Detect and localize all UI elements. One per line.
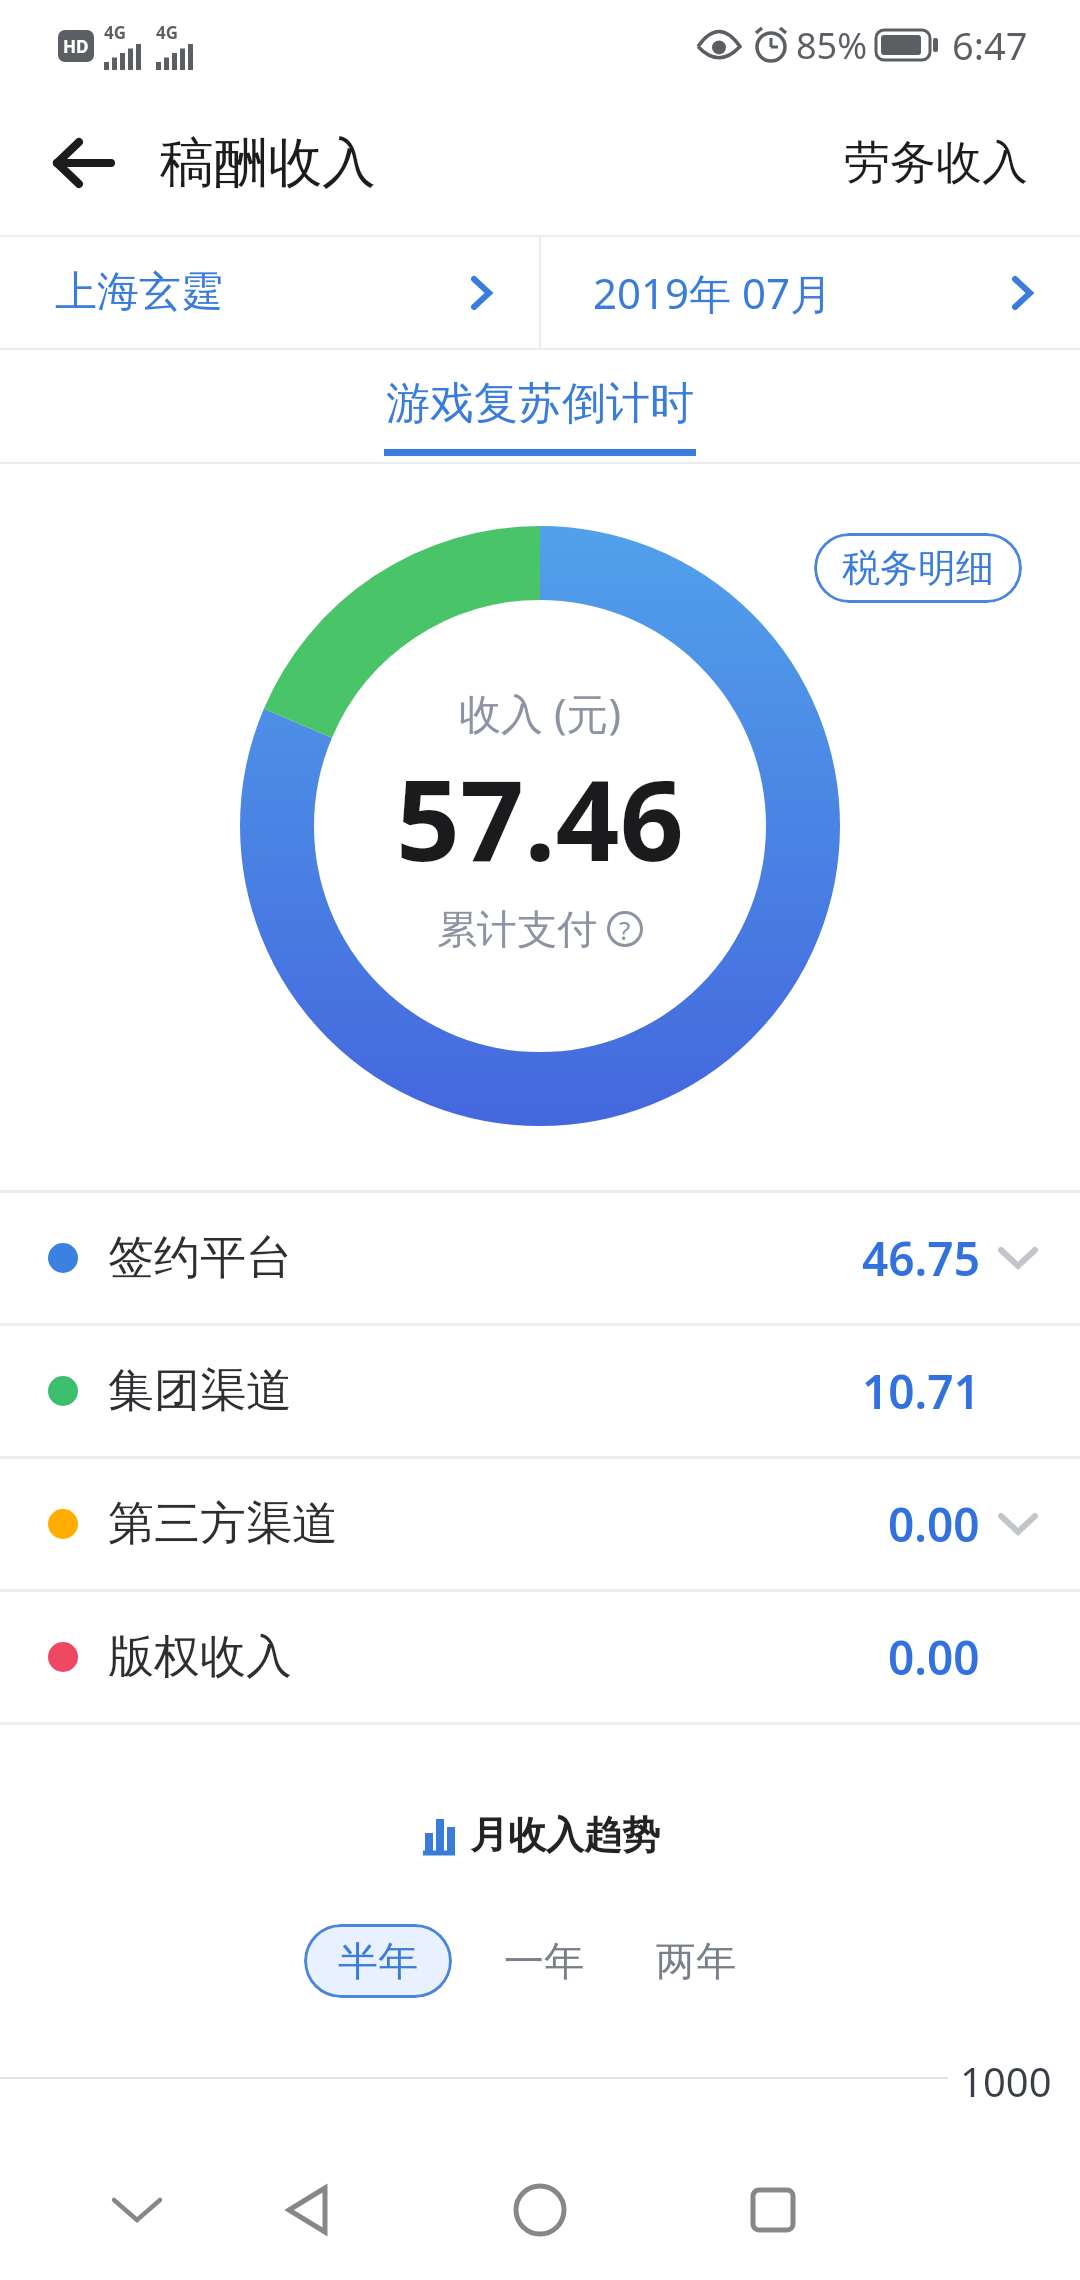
button[interactable] <box>723 2160 823 2260</box>
staticText: 游戏复苏倒计时 <box>386 376 694 431</box>
button[interactable] <box>105 2178 169 2242</box>
staticText: 集团渠道 <box>108 1362 292 1420</box>
staticText: 两年 <box>656 1936 736 1986</box>
staticText: 57.46 <box>396 741 684 894</box>
staticText: ? <box>619 912 631 947</box>
staticText: 0.00 <box>888 1493 980 1556</box>
staticText: 一年 <box>504 1936 584 1986</box>
staticText: 2019年 07月 <box>593 264 833 321</box>
button[interactable]: 第三方渠道 <box>0 1459 1080 1589</box>
staticText: 累计支付 <box>437 904 597 954</box>
staticText: 1000 <box>960 2054 1052 2102</box>
staticText: 4G <box>104 21 127 44</box>
staticText: 0.00 <box>888 1626 980 1689</box>
staticText: 收入 (元) <box>459 684 622 741</box>
staticText: 46.75 <box>862 1227 980 1290</box>
staticText: 税务明细 <box>842 544 994 592</box>
button[interactable]: 半年 <box>304 1924 452 1998</box>
button[interactable]: 两年 <box>648 1928 744 1994</box>
staticText: 月收入趋势 <box>470 1811 660 1859</box>
staticText: 上海玄霆 <box>55 266 223 319</box>
button[interactable]: 游戏复苏倒计时 <box>384 356 696 456</box>
button[interactable]: 版权收入 <box>0 1592 1080 1722</box>
button[interactable]: 税务明细 <box>814 533 1022 603</box>
staticText: 4G <box>156 21 179 44</box>
staticText: 半年 <box>338 1936 418 1986</box>
button[interactable]: 一年 <box>496 1928 592 1994</box>
button[interactable]: 上海玄霆 <box>0 237 539 348</box>
staticText: 85% <box>796 21 868 70</box>
button[interactable]: 签约平台 <box>0 1193 1080 1323</box>
staticText: 6:47 <box>952 19 1028 71</box>
button[interactable]: 集团渠道 <box>0 1326 1080 1456</box>
button[interactable] <box>257 2160 357 2260</box>
button[interactable]: 2019年 07月 <box>541 237 1080 348</box>
staticText: 稿酬收入 <box>160 129 376 197</box>
staticText: 版权收入 <box>108 1628 292 1686</box>
staticText: 10.71 <box>862 1360 980 1423</box>
button[interactable] <box>28 113 138 213</box>
button[interactable]: 劳务收入 <box>844 134 1028 192</box>
staticText: 签约平台 <box>108 1229 292 1287</box>
staticText: 第三方渠道 <box>108 1495 338 1553</box>
staticText: HD <box>63 35 89 58</box>
button[interactable] <box>490 2160 590 2260</box>
